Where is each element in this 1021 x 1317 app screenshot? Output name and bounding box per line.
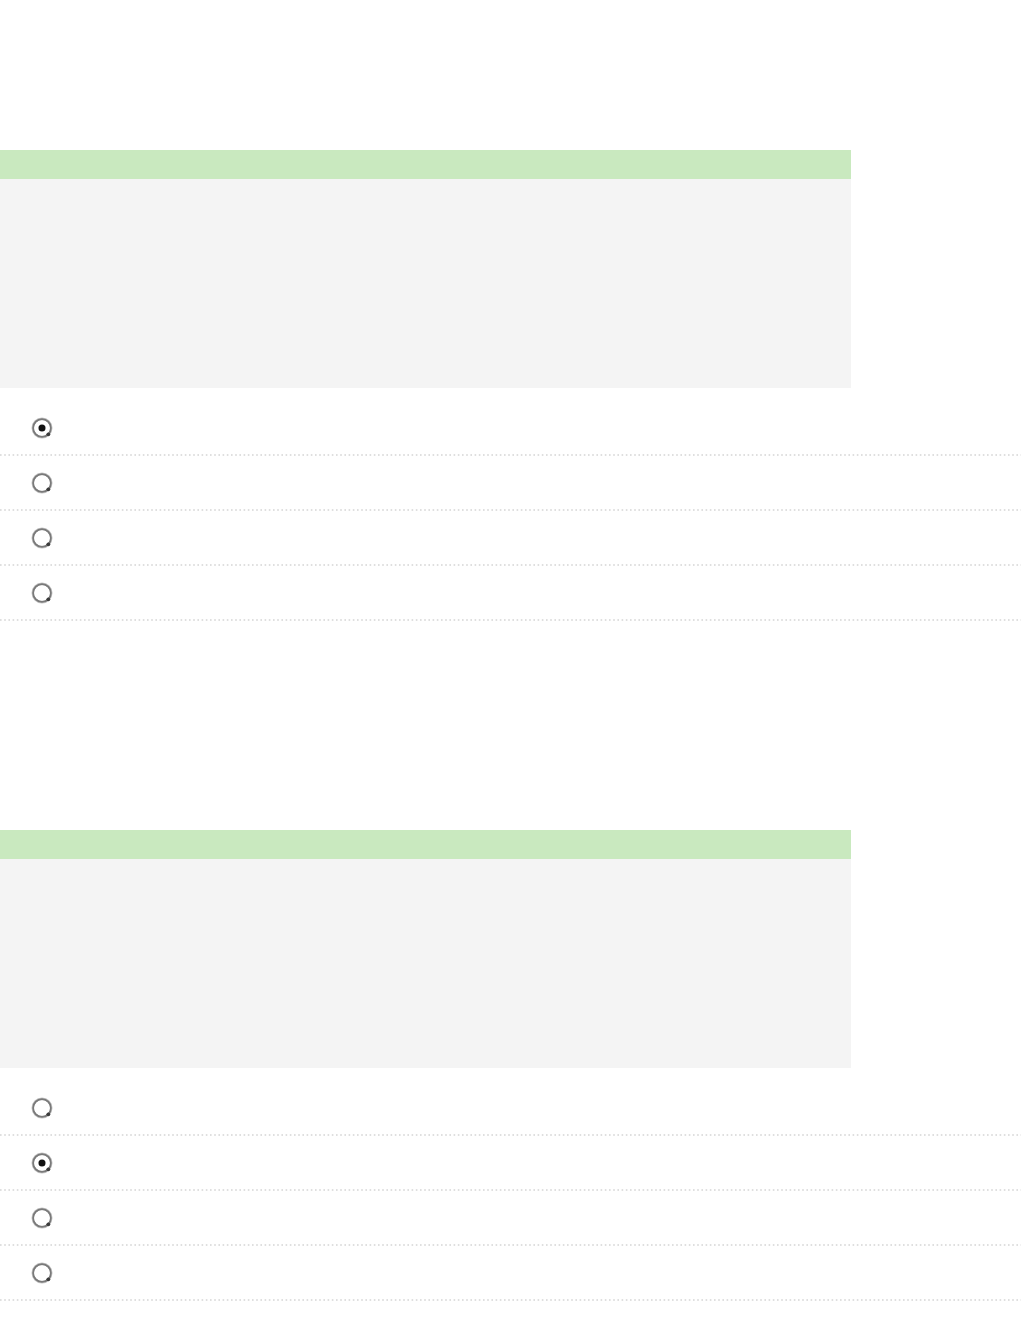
button[interactable]: Question 2 option 4 — [0, 1246, 1021, 1299]
button[interactable]: Question 1 option 2 — [0, 456, 1021, 509]
button[interactable]: Question 2 option 2 — [0, 1136, 1021, 1189]
button[interactable]: Question 1 option 4 — [0, 566, 1021, 619]
button[interactable]: Question 1 option 3 — [0, 511, 1021, 564]
button[interactable]: Question 2 option 1 — [0, 1081, 1021, 1134]
button[interactable]: Question 1 option 1 — [0, 401, 1021, 454]
button[interactable]: Question 2 option 3 — [0, 1191, 1021, 1244]
